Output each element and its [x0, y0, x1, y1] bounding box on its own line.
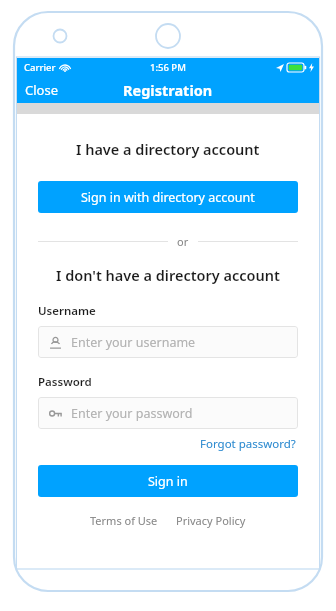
- staticText: Forgot password?: [200, 436, 296, 452]
- button[interactable]: Enter your password: [38, 397, 298, 429]
- staticText: Carrier: [24, 61, 56, 74]
- staticText: Username: [38, 303, 96, 319]
- staticText: Terms of Use: [90, 513, 158, 528]
- button[interactable]: Terms of Use: [86, 511, 162, 530]
- staticText: Sign in: [148, 473, 188, 490]
- button[interactable]: Sign in with directory account: [38, 181, 298, 213]
- staticText: Privacy Policy: [176, 513, 246, 528]
- staticText: I don't have a directory account: [56, 265, 280, 285]
- staticText: 1:56 PM: [150, 61, 186, 74]
- staticText: Password: [38, 374, 92, 390]
- button[interactable]: Sign in: [38, 465, 298, 497]
- button[interactable]: Close: [17, 77, 66, 103]
- button[interactable]: Enter your username: [38, 326, 298, 358]
- staticText: Enter your username: [71, 334, 196, 351]
- staticText: Registration: [123, 80, 213, 100]
- staticText: or: [177, 234, 189, 249]
- staticText: I have a directory account: [76, 139, 260, 159]
- staticText: Enter your password: [71, 405, 193, 422]
- button[interactable]: Forgot password?: [198, 434, 298, 454]
- button[interactable]: Privacy Policy: [172, 511, 250, 530]
- staticText: Sign in with directory account: [81, 189, 255, 206]
- staticText: Close: [25, 81, 58, 99]
